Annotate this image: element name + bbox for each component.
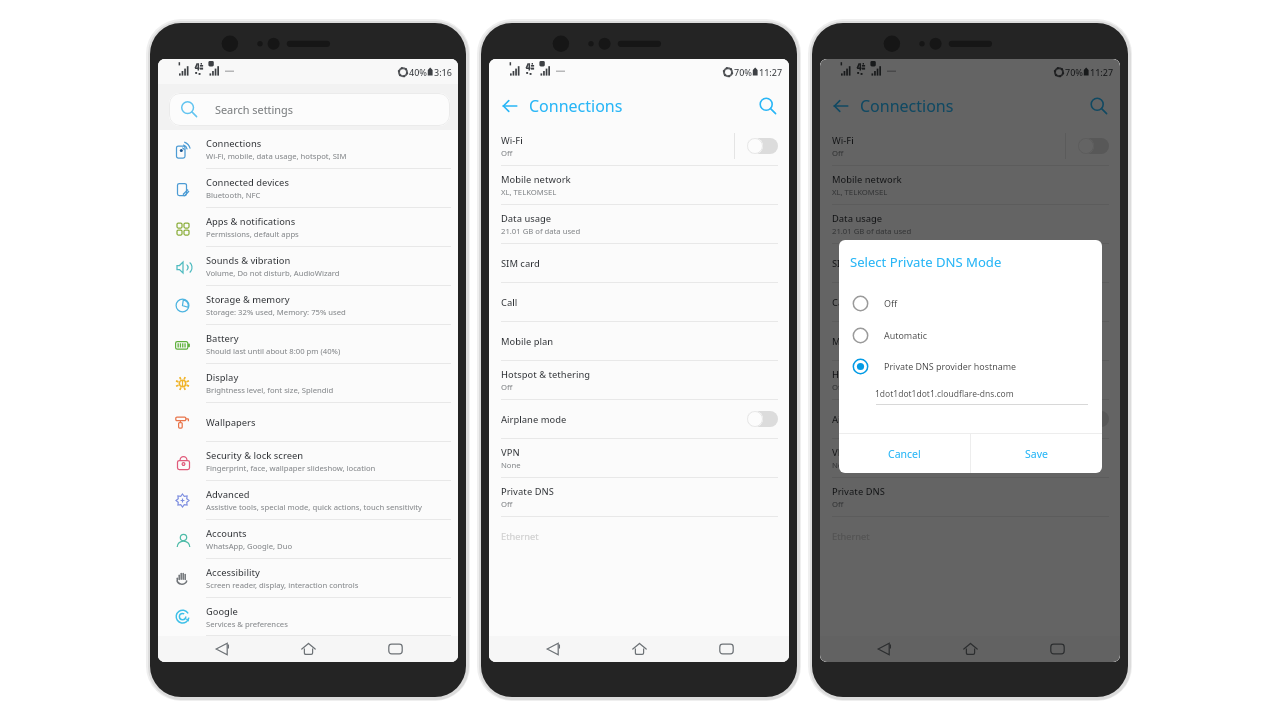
staticText: Airplane mode bbox=[832, 413, 898, 426]
button[interactable]: Mobile plan bbox=[489, 322, 789, 361]
staticText: Advanced bbox=[206, 488, 250, 501]
staticText: Call bbox=[832, 296, 849, 309]
button[interactable]: Search bbox=[759, 97, 777, 115]
staticText: Off bbox=[884, 297, 898, 309]
staticText: Wi-Fi, mobile, data usage, hotspot, SIM bbox=[206, 151, 347, 161]
staticText: 3:16 bbox=[434, 66, 452, 78]
staticText: Connections bbox=[860, 95, 954, 117]
button[interactable]: Wallpapers bbox=[158, 403, 458, 442]
staticText: Off bbox=[832, 382, 844, 392]
staticText: Off bbox=[832, 499, 844, 509]
button[interactable]: Mobile network bbox=[489, 166, 789, 205]
staticText: None bbox=[501, 460, 521, 470]
button[interactable]: Cancel bbox=[839, 434, 970, 473]
button[interactable]: Automatic bbox=[839, 319, 1102, 351]
button[interactable]: Call bbox=[489, 283, 789, 322]
button[interactable]: Hotspot & tethering bbox=[489, 361, 789, 400]
staticText: Off bbox=[832, 148, 844, 158]
staticText: Screen reader, display, interaction cont… bbox=[206, 580, 359, 590]
staticText: Cancel bbox=[888, 447, 921, 461]
button[interactable]: Home bbox=[947, 636, 993, 662]
staticText: Services & preferences bbox=[206, 619, 288, 629]
button[interactable]: Recents bbox=[372, 636, 418, 662]
staticText: Call bbox=[501, 296, 518, 309]
button[interactable]: Mobile plan bbox=[820, 322, 1120, 361]
staticText: VPN bbox=[832, 446, 851, 459]
button[interactable]: Home bbox=[285, 636, 331, 662]
button[interactable]: Search bbox=[1090, 97, 1108, 115]
button[interactable]: Recents bbox=[703, 636, 749, 662]
button[interactable]: Airplane mode bbox=[820, 400, 1120, 439]
button[interactable]: Wi-Fi bbox=[820, 127, 1120, 166]
button[interactable]: Connected devices bbox=[158, 169, 458, 208]
button[interactable]: Security & lock screen bbox=[158, 442, 458, 481]
staticText: SIM card bbox=[832, 257, 871, 270]
button[interactable]: Sounds & vibration bbox=[158, 247, 458, 286]
button[interactable]: Back bbox=[199, 636, 245, 662]
button[interactable]: Back bbox=[832, 97, 849, 114]
button[interactable]: Call bbox=[820, 283, 1120, 322]
button[interactable]: Connections bbox=[158, 130, 458, 169]
staticText: XL, TELKOMSEL bbox=[501, 187, 557, 197]
button[interactable]: Storage & memory bbox=[158, 286, 458, 325]
staticText: Connected devices bbox=[206, 176, 289, 189]
button[interactable]: VPN bbox=[820, 439, 1120, 478]
button[interactable]: Recents bbox=[1034, 636, 1080, 662]
staticText: 1dot1dot1dot1.cloudflare-dns.com bbox=[875, 388, 1014, 400]
staticText: Bluetooth, NFC bbox=[206, 190, 261, 200]
button[interactable]: SIM card bbox=[820, 244, 1120, 283]
button[interactable]: Private DNS bbox=[820, 478, 1120, 517]
button[interactable]: Toggle Airplane mode bbox=[1078, 411, 1109, 427]
staticText: Brightness level, font size, Splendid bbox=[206, 385, 334, 395]
staticText: 11:27 bbox=[1090, 66, 1114, 78]
staticText: Storage: 32% used, Memory: 75% used bbox=[206, 307, 346, 317]
staticText: WhatsApp, Google, Duo bbox=[206, 541, 293, 551]
button[interactable]: Google bbox=[158, 598, 458, 636]
button[interactable]: VPN bbox=[489, 439, 789, 478]
button[interactable]: Toggle Wi-Fi bbox=[747, 138, 778, 154]
button[interactable]: Private DNS provider hostname bbox=[839, 350, 1102, 382]
staticText: 40% bbox=[409, 66, 427, 78]
button[interactable]: Data usage bbox=[489, 205, 789, 244]
button[interactable]: Airplane mode bbox=[489, 400, 789, 439]
staticText: Private DNS bbox=[501, 485, 554, 498]
staticText: Volume, Do not disturb, AudioWizard bbox=[206, 268, 340, 278]
staticText: Private DNS provider hostname bbox=[884, 360, 1017, 372]
staticText: Hotspot & tethering bbox=[501, 368, 591, 381]
button[interactable]: SIM card bbox=[489, 244, 789, 283]
button[interactable]: Off bbox=[839, 287, 1102, 319]
staticText: VPN bbox=[501, 446, 520, 459]
staticText: Wallpapers bbox=[206, 416, 256, 429]
button[interactable]: Data usage bbox=[820, 205, 1120, 244]
button[interactable]: Back bbox=[501, 97, 518, 114]
staticText: Security & lock screen bbox=[206, 449, 304, 462]
staticText: 21.01 GB of data used bbox=[501, 226, 581, 236]
staticText: Search settings bbox=[215, 102, 293, 117]
button[interactable]: Mobile network bbox=[820, 166, 1120, 205]
staticText: Mobile network bbox=[501, 173, 571, 186]
button[interactable]: Apps & notifications bbox=[158, 208, 458, 247]
button[interactable]: Back bbox=[530, 636, 576, 662]
button[interactable]: Wi-Fi bbox=[489, 127, 789, 166]
button[interactable]: Advanced bbox=[158, 481, 458, 520]
staticText: Airplane mode bbox=[501, 413, 567, 426]
button[interactable]: Accessibility bbox=[158, 559, 458, 598]
button[interactable]: Home bbox=[616, 636, 662, 662]
button[interactable]: Save bbox=[971, 434, 1102, 473]
button[interactable]: Toggle Airplane mode bbox=[747, 411, 778, 427]
button[interactable]: Battery bbox=[158, 325, 458, 364]
staticText: None bbox=[832, 460, 852, 470]
button[interactable]: Hotspot & tethering bbox=[820, 361, 1120, 400]
button[interactable]: Accounts bbox=[158, 520, 458, 559]
button[interactable]: Toggle Wi-Fi bbox=[1078, 138, 1109, 154]
button[interactable]: Back bbox=[861, 636, 907, 662]
button[interactable]: Private DNS bbox=[489, 478, 789, 517]
staticText: Sounds & vibration bbox=[206, 254, 291, 267]
staticText: Off bbox=[501, 382, 513, 392]
staticText: Off bbox=[501, 148, 513, 158]
button[interactable]: Search settings bbox=[169, 93, 450, 126]
staticText: Display bbox=[206, 371, 239, 384]
button[interactable]: Display bbox=[158, 364, 458, 403]
staticText: Fingerprint, face, wallpaper slideshow, … bbox=[206, 463, 376, 473]
staticText: Wi-Fi bbox=[832, 134, 854, 147]
